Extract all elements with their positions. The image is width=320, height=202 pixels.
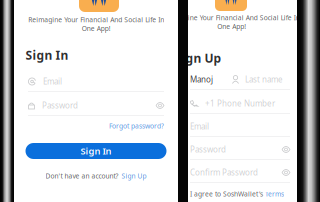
staticText: Reimagine Your Financial And Social Life…	[28, 15, 164, 33]
staticText: Confirm Password	[190, 167, 258, 178]
button[interactable]: Sign In	[25, 143, 166, 159]
staticText: Password	[42, 100, 78, 111]
staticText: I agree to SoshWallet's	[190, 190, 263, 198]
staticText: Sign Up	[121, 172, 146, 180]
button[interactable]: Forgot password?	[28, 122, 164, 130]
staticText: Reimagine Your Financial And Social Life…	[163, 13, 299, 31]
staticText: Don't have an account?	[45, 172, 118, 180]
button[interactable]: Terms	[265, 190, 284, 198]
staticText: Password	[190, 144, 226, 155]
staticText: Forgot password?	[109, 122, 164, 130]
staticText: Last name	[245, 74, 283, 85]
staticText: Terms	[265, 190, 284, 198]
staticText: Manoj	[190, 74, 213, 85]
staticText: +1 Phone Number	[205, 98, 275, 109]
staticText: Email	[43, 76, 62, 87]
staticText: Sign In	[25, 47, 68, 63]
button[interactable]: Sign Up	[121, 172, 146, 180]
staticText: Sign Up	[174, 50, 221, 66]
staticText: Email	[190, 121, 209, 132]
staticText: Sign In	[80, 145, 111, 157]
